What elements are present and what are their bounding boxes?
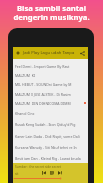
button[interactable]: Feel Demi - Import Game By Rast	[15, 64, 90, 69]
button[interactable]: Khanol Cinc	[15, 111, 90, 116]
button[interactable]: MALZUM DIN DIHNICOMA DIMM	[15, 101, 90, 106]
button[interactable]: Pause	[49, 170, 54, 175]
staticText: sit	[15, 172, 19, 176]
button[interactable]: Jadi Play Lagu udah Tanpa Offline	[13, 47, 88, 59]
staticText: Sumber : the secret side secret	[15, 165, 61, 169]
button[interactable]: Rusak Keng Sudah - Ikon Qiduy'd Pig	[15, 122, 90, 127]
button[interactable]: Besit iam Dan - Kleind Rig - Lowat bruda	[15, 156, 90, 161]
other: Share	[80, 51, 85, 56]
button[interactable]: MALZUM X JUSI ALSTEK - Di Rasim	[15, 92, 90, 97]
button[interactable]: Next	[57, 170, 62, 175]
button[interactable]: MIL HEBUT - SOUNDni Game by M	[15, 82, 90, 87]
button[interactable]: Previous	[41, 170, 46, 175]
button[interactable]: Kaner Lain Dada - Didi Rispit, some Dali	[15, 134, 90, 139]
button[interactable]: Kurzana Warudy - Siti Nkuf tehni re In	[15, 145, 90, 150]
staticText: Bisa sambil santai dengerin musiknya.	[0, 3, 103, 22]
button[interactable]: MALZUM KI	[15, 73, 90, 78]
staticText: Jadi Play Lagu udah Tanpa Offline	[23, 50, 78, 56]
